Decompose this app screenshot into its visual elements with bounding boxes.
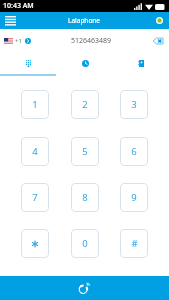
button[interactable]: 2	[71, 90, 99, 119]
staticText: 1	[32, 98, 38, 111]
button[interactable]: +1	[4, 37, 31, 45]
staticText: 3	[131, 98, 137, 111]
staticText: #	[131, 237, 138, 250]
button[interactable]: Status	[153, 14, 166, 27]
button[interactable]: 0	[71, 229, 99, 258]
staticText: 7	[32, 191, 38, 204]
button[interactable]: Backspace	[151, 34, 165, 48]
staticText: 6	[131, 145, 137, 158]
button[interactable]: 9	[120, 183, 148, 212]
button[interactable]: 8	[71, 183, 99, 212]
button[interactable]: 5	[71, 137, 99, 166]
staticText: 2	[82, 98, 88, 111]
staticText: 10:43 AM	[3, 1, 34, 11]
staticText: 4	[32, 145, 38, 158]
button[interactable]: Contacts	[113, 52, 169, 74]
staticText: 0	[82, 237, 88, 250]
staticText: 9	[131, 191, 137, 204]
button[interactable]: Call	[0, 276, 169, 300]
button[interactable]: 4	[21, 137, 49, 166]
button[interactable]: 7	[21, 183, 49, 212]
staticText: 5	[82, 145, 88, 158]
button[interactable]: Recents	[57, 52, 113, 74]
staticText: Lalaphone	[68, 16, 101, 25]
button[interactable]: 1	[21, 90, 49, 119]
button[interactable]	[21, 229, 49, 258]
staticText: +1	[15, 37, 22, 45]
button[interactable]: Dialpad	[0, 52, 57, 74]
button[interactable]: 6	[120, 137, 148, 166]
button[interactable]: #	[120, 229, 148, 258]
staticText: 8	[82, 191, 88, 204]
staticText: 5126463489	[71, 36, 112, 46]
button[interactable]: Menu	[3, 13, 18, 28]
button[interactable]: 3	[120, 90, 148, 119]
